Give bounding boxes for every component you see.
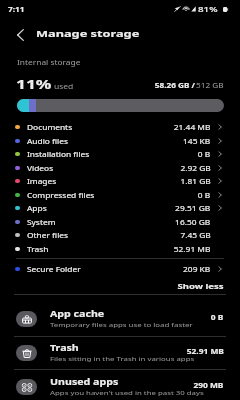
button[interactable]: Unused apps — [0, 370, 240, 400]
staticText: Unused apps — [50, 376, 119, 387]
staticText: 1.81 GB — [180, 177, 211, 186]
staticText: Trash — [50, 342, 79, 353]
staticText: Audio files — [27, 137, 68, 146]
button[interactable]: Trash — [0, 242, 240, 256]
staticText: 81% — [198, 4, 218, 14]
button[interactable]: Trash — [0, 336, 240, 369]
staticText: 7.45 GB — [180, 231, 211, 240]
staticText: 0 B — [198, 191, 211, 200]
button[interactable]: Compressed files — [0, 188, 240, 202]
staticText: 52.91 MB — [187, 347, 224, 356]
staticText: Files sitting in the Trash in various ap… — [50, 355, 195, 363]
staticText: 21.44 MB — [174, 123, 211, 132]
button[interactable]: Secure Folder — [0, 262, 240, 276]
staticText: 209 KB — [183, 265, 211, 274]
button[interactable]: Installation files — [0, 147, 240, 161]
staticText: Documents — [27, 123, 72, 132]
button[interactable]: App cache — [0, 302, 240, 335]
staticText: 290 MB — [193, 381, 224, 390]
staticText: App cache — [50, 308, 104, 319]
staticText: Show less — [177, 281, 224, 291]
staticText: System — [27, 218, 56, 227]
button[interactable]: Videos — [0, 161, 240, 175]
button[interactable]: Navigate up — [7, 22, 33, 48]
staticText: 11% — [16, 75, 52, 93]
staticText: Apps — [27, 204, 47, 213]
staticText: 29.51 GB — [175, 204, 211, 213]
staticText: 0 B — [211, 313, 224, 322]
staticText: 16.50 GB — [175, 218, 211, 227]
button[interactable]: Images — [0, 174, 240, 188]
staticText: Temporary files apps use to load faster — [50, 321, 194, 329]
staticText: 0 B — [198, 150, 211, 159]
staticText: 52.91 MB — [174, 245, 211, 254]
staticText: 512 GB — [196, 81, 224, 89]
staticText: 58.26 GB / — [155, 81, 196, 89]
staticText: used — [54, 82, 74, 91]
staticText: Secure Folder — [27, 265, 81, 274]
staticText: 145 KB — [183, 137, 211, 146]
staticText: Compressed files — [27, 191, 95, 200]
staticText: Videos — [27, 164, 54, 173]
staticText: Installation files — [27, 150, 89, 159]
button[interactable]: Apps — [0, 201, 240, 215]
staticText: 2.92 GB — [180, 164, 211, 173]
button[interactable]: Audio files — [0, 134, 240, 148]
button[interactable]: Documents — [0, 120, 240, 134]
staticText: Images — [27, 177, 56, 186]
button[interactable]: Show less — [173, 277, 240, 295]
button[interactable]: System — [0, 215, 240, 229]
staticText: 7:11 — [8, 5, 25, 13]
staticText: Apps you haven't used in the past 30 day… — [50, 389, 204, 397]
staticText: Internal storage — [17, 58, 81, 67]
button[interactable]: Other files — [0, 228, 240, 242]
staticText: Manage storage — [36, 27, 140, 40]
staticText: Trash — [27, 245, 50, 254]
staticText: Other files — [27, 231, 68, 240]
